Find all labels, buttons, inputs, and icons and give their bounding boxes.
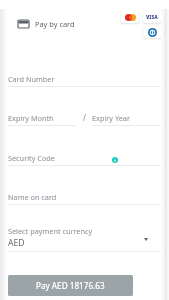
staticText: Name on card <box>8 192 57 202</box>
staticText: VISA <box>146 14 158 21</box>
staticText: Security Code <box>8 153 55 163</box>
staticText: / <box>83 112 86 123</box>
staticText: AED <box>8 237 25 249</box>
other: Security code info <box>112 157 118 163</box>
staticText: Expiry Month <box>8 113 54 123</box>
other: Select currency <box>144 238 148 241</box>
staticText: Card Number <box>8 74 55 84</box>
button[interactable]: Select payment currency <box>8 217 161 252</box>
staticText: Select payment currency <box>8 226 93 236</box>
staticText: Pay AED 18176.63 <box>36 280 105 291</box>
button[interactable]: Pay AED 18176.63 <box>8 275 133 296</box>
staticText: Pay by card <box>35 19 75 29</box>
button[interactable]: Expiry Year <box>92 99 161 126</box>
button[interactable]: Expiry Month <box>8 99 76 126</box>
button[interactable]: Card Number <box>8 60 161 87</box>
button[interactable]: Security Code <box>8 139 161 166</box>
staticText: Expiry Year <box>92 113 130 123</box>
button[interactable]: Pay by card <box>8 19 75 29</box>
button[interactable]: Name on card <box>8 178 161 205</box>
